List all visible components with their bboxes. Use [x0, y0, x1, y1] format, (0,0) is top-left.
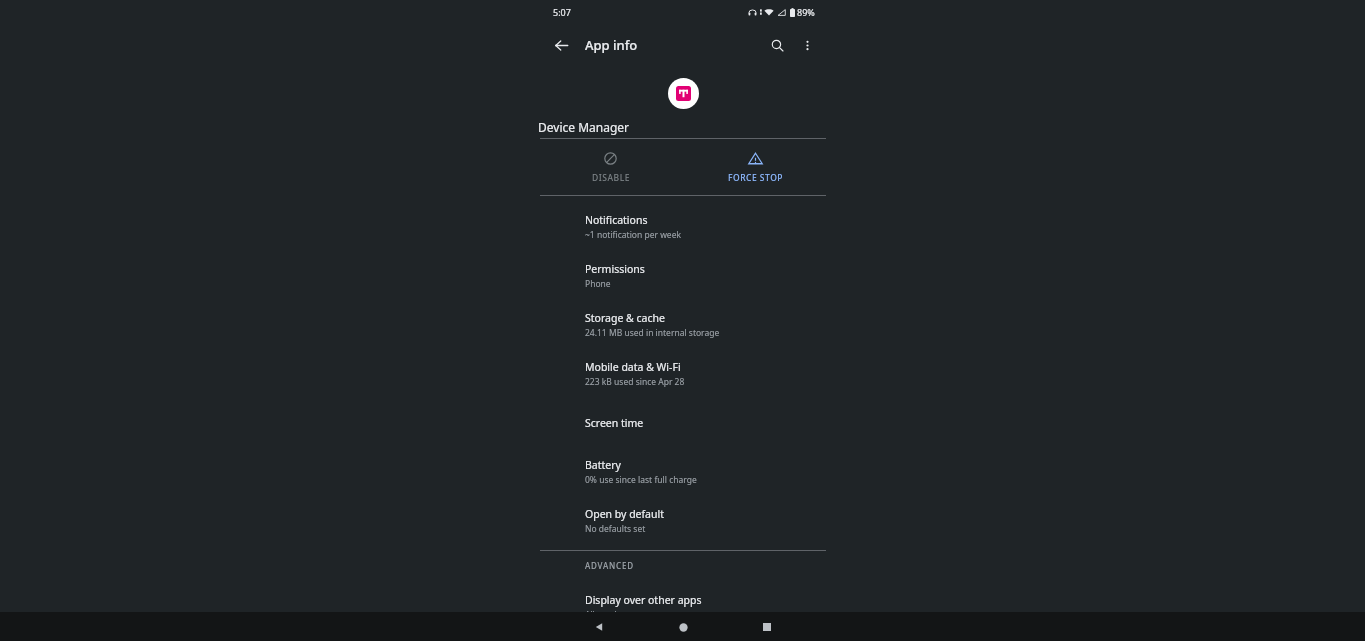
staticText: ~1 notification per week	[585, 229, 681, 241]
staticText: Allowed	[585, 609, 617, 621]
button[interactable]: Search	[762, 30, 792, 60]
button[interactable]: FORCE STOP	[683, 139, 828, 195]
staticText: App info	[585, 36, 638, 54]
staticText: DISABLE	[592, 172, 630, 184]
staticText: Mobile data & Wi-Fi	[585, 360, 681, 374]
button[interactable]: Back	[586, 614, 612, 640]
button[interactable]: Notifications	[538, 202, 828, 251]
button[interactable]: DISABLE	[538, 139, 683, 195]
button[interactable]: Recent apps	[754, 614, 780, 640]
staticText: Phone	[585, 278, 611, 290]
staticText: Device Manager	[538, 119, 828, 135]
staticText: Storage & cache	[585, 311, 665, 325]
staticText: Screen time	[585, 416, 644, 430]
button[interactable]: Back	[546, 30, 576, 60]
staticText: 223 kB used since Apr 28	[585, 376, 685, 388]
button[interactable]: Battery	[538, 447, 828, 496]
staticText: 24.11 MB used in internal storage	[585, 327, 720, 339]
staticText: Permissions	[585, 262, 645, 276]
staticText: FORCE STOP	[728, 172, 783, 184]
button[interactable]: Home	[670, 614, 696, 640]
button[interactable]: Storage & cache	[538, 300, 828, 349]
staticText: Display over other apps	[585, 593, 702, 607]
staticText: No defaults set	[585, 523, 646, 535]
button[interactable]: Permissions	[538, 251, 828, 300]
staticText: ADVANCED	[585, 560, 634, 571]
staticText: 0% use since last full charge	[585, 474, 697, 486]
button[interactable]: Display over other apps	[538, 582, 828, 631]
staticText: Open by default	[585, 507, 665, 521]
staticText: 89%	[797, 6, 815, 18]
staticText: 5:07	[553, 6, 571, 18]
button[interactable]: Mobile data & Wi-Fi	[538, 349, 828, 398]
button[interactable]: More options	[792, 30, 822, 60]
button[interactable]: Open by default	[538, 496, 828, 545]
staticText: Battery	[585, 458, 621, 472]
staticText: Notifications	[585, 213, 648, 227]
button[interactable]: Screen time	[538, 398, 828, 447]
